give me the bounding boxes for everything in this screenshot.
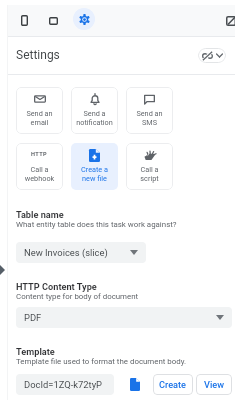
button[interactable]: Call a script — [126, 143, 173, 190]
button[interactable]: View — [196, 374, 232, 395]
staticText: New Invoices (slice) — [24, 247, 108, 258]
staticText: What entity table does this task work ag… — [16, 220, 177, 229]
button[interactable]: HTTP — [16, 143, 63, 190]
button[interactable]: Send an SMS — [126, 87, 173, 134]
staticText: Send an SMS — [126, 109, 173, 127]
button[interactable]: Unlink options — [198, 48, 226, 63]
staticText: Create — [159, 379, 187, 390]
button[interactable]: Open in new window — [220, 5, 235, 28]
staticText: DocId=1ZQ-k72tyP — [24, 379, 103, 390]
button[interactable]: Settings — [73, 8, 95, 30]
staticText: Call a webhook — [16, 165, 63, 183]
staticText: Call a script — [126, 165, 173, 183]
staticText: Send an email — [16, 109, 63, 127]
staticText: Content type for body of document — [16, 292, 139, 301]
button[interactable]: Create a new file — [71, 143, 118, 190]
staticText: Settings — [16, 48, 60, 62]
staticText: View — [204, 379, 225, 390]
button[interactable]: Phone preview — [13, 9, 36, 32]
staticText: HTTP Content Type — [16, 281, 97, 292]
staticText: Template — [16, 346, 55, 357]
button[interactable]: Create — [153, 374, 193, 395]
button[interactable]: Send an email — [16, 87, 63, 134]
staticText: PDF — [24, 312, 42, 323]
staticText: Table name — [16, 209, 64, 220]
button[interactable]: Open document — [125, 374, 145, 394]
button[interactable]: Tablet preview — [42, 9, 65, 32]
button[interactable]: PDF — [16, 307, 232, 328]
staticText: Create a new file — [71, 165, 118, 183]
button[interactable]: New Invoices (slice) — [16, 242, 146, 263]
button[interactable]: DocId=1ZQ-k72tyP — [16, 374, 114, 395]
button[interactable]: Send a notification — [71, 87, 118, 134]
staticText: Send a notification — [71, 109, 118, 127]
staticText: Template file used to format the documen… — [16, 357, 187, 366]
staticText: HTTP — [31, 151, 48, 158]
